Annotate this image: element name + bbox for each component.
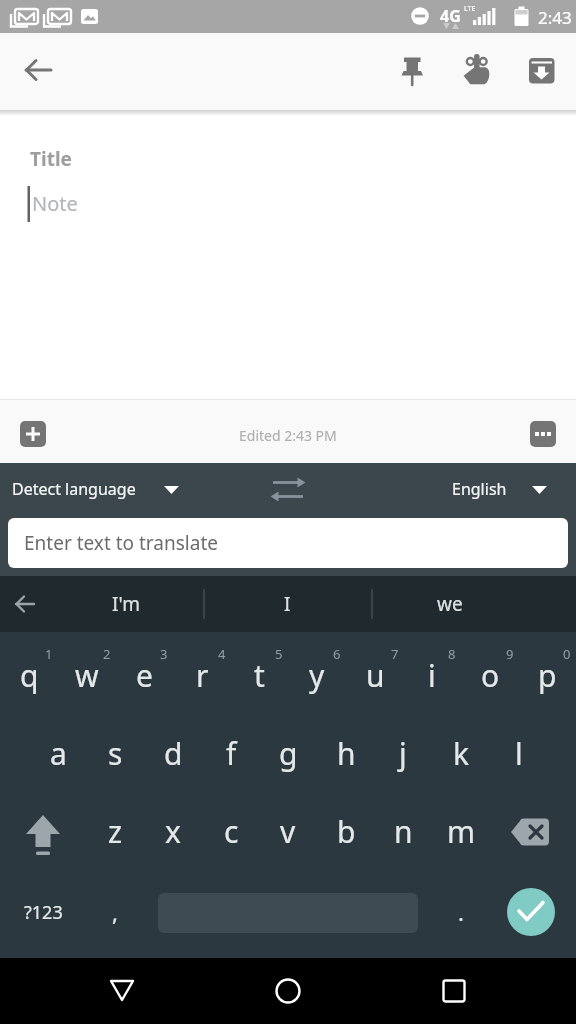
staticText: Detect language (12, 478, 136, 500)
button[interactable] (524, 415, 564, 455)
button[interactable] (490, 795, 576, 873)
button[interactable] (264, 465, 312, 513)
staticText: t (254, 655, 265, 696)
staticText: x (165, 811, 181, 852)
button[interactable]: r (173, 639, 231, 717)
button[interactable]: , (86, 873, 144, 951)
button[interactable]: i (403, 639, 461, 717)
button[interactable]: b (317, 795, 375, 873)
button[interactable] (507, 888, 555, 936)
button[interactable] (430, 967, 478, 1015)
button[interactable]: q (0, 639, 58, 717)
staticText: w (75, 655, 99, 696)
button[interactable]: Detect language (12, 478, 142, 500)
staticText: 6 (333, 645, 341, 661)
button[interactable]: p (518, 639, 576, 717)
staticText: 7 (391, 645, 399, 661)
staticText: r (196, 655, 209, 696)
staticText: z (108, 811, 123, 852)
button[interactable]: w (58, 639, 116, 717)
staticText: y (309, 655, 325, 696)
staticText: p (538, 655, 557, 696)
button[interactable]: I'm (56, 578, 196, 630)
staticText: b (337, 811, 356, 852)
button[interactable]: e (115, 639, 173, 717)
staticText: Title (30, 146, 72, 168)
button[interactable]: c (202, 795, 260, 873)
staticText: 2 (103, 645, 111, 661)
staticText: 1 (45, 645, 53, 661)
button[interactable]: Note (32, 190, 112, 214)
staticText: 4G (440, 5, 461, 25)
button[interactable] (524, 470, 564, 510)
button[interactable]: h (317, 717, 375, 795)
staticText: I'm (112, 591, 140, 617)
staticText: e (136, 655, 153, 696)
button[interactable]: v (259, 795, 317, 873)
staticText: 2:43 (538, 6, 572, 26)
staticText: 3 (160, 645, 168, 661)
button[interactable] (98, 967, 146, 1015)
button[interactable]: k (432, 717, 490, 795)
staticText: m (447, 811, 476, 852)
staticText: v (280, 811, 296, 852)
button[interactable]: English (452, 478, 514, 500)
button[interactable]: t (230, 639, 288, 717)
button[interactable]: z (86, 795, 144, 873)
button[interactable] (517, 46, 565, 94)
staticText: j (399, 733, 407, 774)
button[interactable] (4, 583, 46, 625)
staticText: u (366, 655, 385, 696)
staticText: 9 (506, 645, 514, 661)
staticText: h (337, 733, 356, 774)
staticText: g (279, 733, 298, 774)
button[interactable]: ?123 (0, 873, 86, 951)
staticText: c (224, 811, 239, 852)
button[interactable] (150, 470, 190, 510)
button[interactable]: m (432, 795, 490, 873)
staticText: ?123 (24, 900, 63, 925)
button[interactable] (453, 46, 501, 94)
button[interactable]: f (202, 717, 260, 795)
staticText: a (50, 733, 67, 774)
button[interactable]: s (86, 717, 144, 795)
staticText: . (458, 897, 464, 927)
staticText: k (453, 733, 470, 774)
staticText: 0 (563, 645, 571, 661)
staticText: i (428, 655, 436, 696)
button[interactable] (0, 795, 86, 873)
staticText: 5 (275, 645, 283, 661)
button[interactable]: j (374, 717, 432, 795)
button[interactable]: u (346, 639, 404, 717)
button[interactable]: Title (30, 146, 100, 168)
button[interactable]: g (259, 717, 317, 795)
staticText: Edited 2:43 PM (239, 426, 337, 445)
staticText: s (108, 733, 123, 774)
button[interactable]: a (29, 717, 87, 795)
button[interactable]: Enter text to translate (8, 518, 568, 568)
button[interactable] (264, 967, 312, 1015)
button[interactable]: x (144, 795, 202, 873)
button[interactable]: o (461, 639, 519, 717)
staticText: we (437, 591, 463, 617)
button[interactable]: we (380, 578, 520, 630)
button[interactable]: l (490, 717, 548, 795)
staticText: English (452, 478, 507, 500)
button[interactable] (388, 46, 436, 94)
staticText: , (112, 897, 118, 927)
staticText: 4 (218, 645, 226, 661)
staticText: I (284, 591, 291, 617)
staticText: LTE (464, 4, 476, 14)
button[interactable]: I (212, 578, 362, 630)
button[interactable] (14, 46, 62, 94)
button[interactable]: d (144, 717, 202, 795)
staticText: Enter text to translate (24, 530, 218, 556)
staticText: Note (32, 190, 78, 214)
staticText: d (164, 733, 183, 774)
button[interactable] (14, 415, 54, 455)
button[interactable]: y (288, 639, 346, 717)
button[interactable]: n (374, 795, 432, 873)
button[interactable]: . (432, 873, 490, 951)
staticText: q (20, 655, 39, 696)
